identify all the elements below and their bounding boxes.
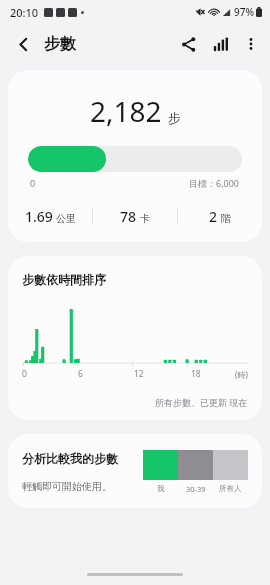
- staticText: 30-39: [186, 484, 206, 494]
- button[interactable]: Back: [6, 27, 40, 61]
- button[interactable]: Share: [172, 28, 204, 60]
- staticText: 目標：6,000: [189, 177, 240, 189]
- staticText: 2,182: [90, 92, 162, 130]
- staticText: 6: [78, 368, 83, 380]
- button[interactable]: 分析比較我的步數: [8, 434, 262, 508]
- staticText: (時): [235, 369, 248, 380]
- staticText: 所有人: [219, 484, 242, 493]
- staticText: 卡: [140, 212, 150, 225]
- button[interactable]: 1.69: [8, 207, 92, 226]
- staticText: 所有步數、已更新 現在: [155, 396, 248, 408]
- staticText: 步數依時間排序: [22, 272, 106, 287]
- staticText: 20:10: [10, 5, 39, 20]
- staticText: 12: [134, 368, 144, 380]
- button[interactable]: 78: [93, 207, 177, 226]
- button[interactable]: 步數依時間排序: [8, 256, 262, 420]
- staticText: 步數: [44, 34, 76, 54]
- staticText: 分析比較我的步數: [22, 451, 118, 466]
- button[interactable]: Statistics: [204, 28, 236, 60]
- staticText: 97%: [234, 5, 254, 19]
- staticText: 0: [30, 177, 36, 189]
- staticText: 2: [209, 207, 218, 226]
- staticText: 階: [221, 212, 231, 225]
- staticText: 0: [22, 368, 27, 380]
- button[interactable]: More options: [236, 29, 266, 59]
- staticText: 78: [120, 207, 137, 226]
- button[interactable]: 2,182: [8, 70, 262, 242]
- staticText: 公里: [56, 212, 76, 225]
- staticText: 1.69: [25, 207, 53, 226]
- staticText: 步: [168, 110, 181, 126]
- staticText: 我: [157, 484, 165, 493]
- staticText: 輕觸即可開始使用。: [22, 480, 112, 493]
- button[interactable]: 2: [178, 207, 262, 226]
- staticText: 18: [191, 368, 201, 380]
